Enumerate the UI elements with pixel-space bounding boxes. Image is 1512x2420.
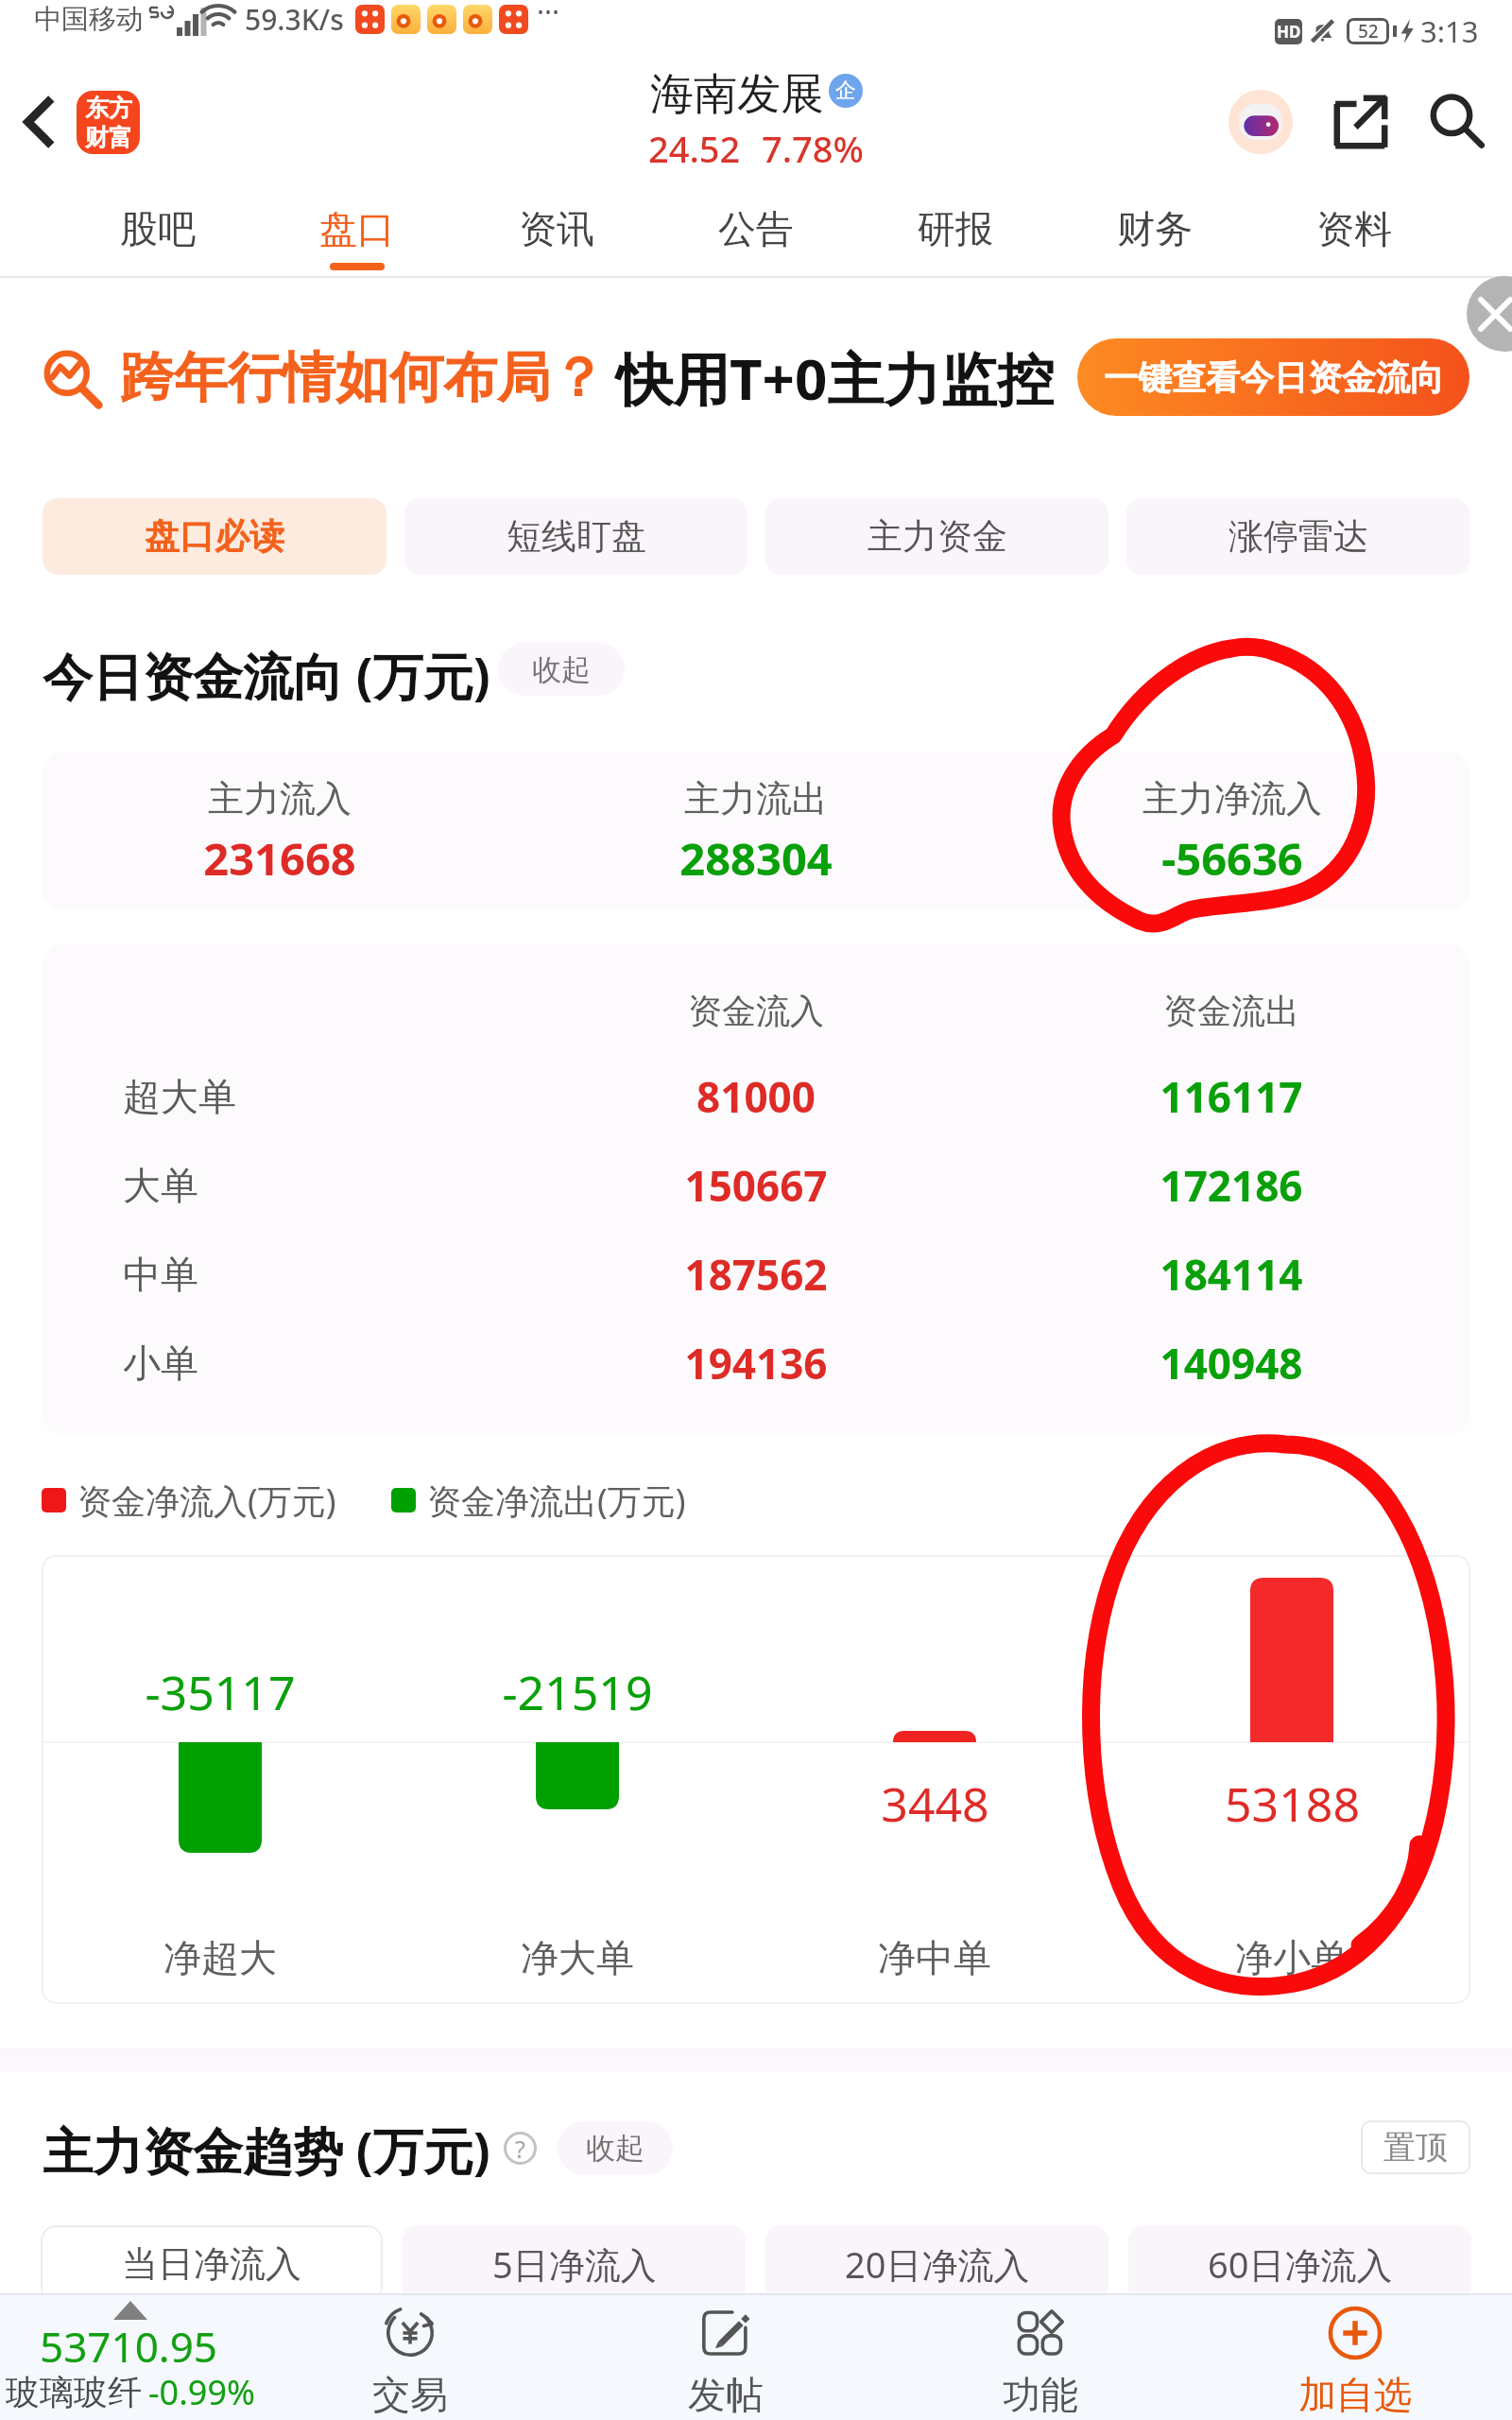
staticText: 主力资金趋势 (万元) xyxy=(43,2116,490,2184)
staticText: 资讯 xyxy=(519,205,594,252)
button[interactable]: 研报 xyxy=(889,181,1022,276)
staticText: 小单 xyxy=(123,1340,198,1387)
staticText: 187562 xyxy=(684,1246,828,1303)
staticText: 53188 xyxy=(1225,1772,1360,1836)
staticText: 53710.95 xyxy=(40,2318,217,2375)
staticText: 3448 xyxy=(881,1772,989,1836)
button[interactable]: 当日净流入 xyxy=(41,2225,383,2303)
staticText: 加自选 xyxy=(1298,2371,1412,2418)
button[interactable]: Close xyxy=(1467,276,1512,352)
staticText: 184114 xyxy=(1160,1246,1303,1303)
staticText: 资金净流入(万元) xyxy=(77,1478,336,1524)
staticText: 财富 xyxy=(85,123,132,152)
staticText: 短线盯盘 xyxy=(507,514,646,559)
button[interactable]: 资讯 xyxy=(490,181,623,276)
button[interactable]: 功能 xyxy=(883,2295,1197,2420)
button[interactable]: 5日净流入 xyxy=(403,2225,746,2303)
staticText: 公告 xyxy=(718,205,794,252)
staticText: 资料 xyxy=(1316,205,1392,252)
staticText: 收起 xyxy=(532,651,591,688)
staticText: 150667 xyxy=(684,1157,828,1214)
staticText: -35117 xyxy=(145,1660,296,1724)
button[interactable]: 60日净流入 xyxy=(1128,2225,1471,2303)
button[interactable]: 股吧 xyxy=(92,181,224,276)
button[interactable]: 财务 xyxy=(1089,181,1221,276)
staticText: 盘口必读 xyxy=(145,514,284,559)
button[interactable]: 主力资金 xyxy=(765,498,1108,575)
staticText: 研报 xyxy=(918,205,993,252)
staticText: 172186 xyxy=(1160,1157,1303,1214)
staticText: 主力流入 xyxy=(208,776,352,821)
button[interactable]: 发帖 xyxy=(568,2295,883,2420)
staticText: 快用T+0主力监控 xyxy=(616,339,1055,417)
button[interactable]: 置顶 xyxy=(1361,2120,1470,2174)
staticText: -21519 xyxy=(502,1660,653,1724)
staticText: 主力净流入 xyxy=(1143,776,1322,821)
staticText: 5日净流入 xyxy=(492,2239,657,2289)
staticText: 288304 xyxy=(679,828,833,889)
button[interactable]: 涨停雷达 xyxy=(1126,498,1469,575)
button[interactable]: 20日净流入 xyxy=(765,2225,1108,2303)
staticText: 跨年行情如何布局？ xyxy=(120,344,605,412)
staticText: 今日资金流向 (万元) xyxy=(43,641,490,709)
button[interactable]: 一键查看今日资金流向 xyxy=(1077,338,1469,416)
staticText: 中单 xyxy=(123,1251,198,1298)
staticText: 194136 xyxy=(684,1335,828,1391)
staticText: 59.3K/s xyxy=(245,0,344,39)
button[interactable]: 收起 xyxy=(558,2121,673,2175)
staticText: 东方 xyxy=(85,94,132,123)
staticText: 置顶 xyxy=(1383,2127,1448,2168)
staticText: 超大单 xyxy=(123,1073,236,1120)
button[interactable]: Share xyxy=(1323,84,1399,160)
staticText: 发帖 xyxy=(688,2371,764,2418)
staticText: 大单 xyxy=(123,1162,198,1209)
button[interactable]: 短线盯盘 xyxy=(404,498,747,575)
button[interactable]: 盘口必读 xyxy=(43,498,387,575)
staticText: -56636 xyxy=(1161,828,1303,889)
staticText: 净超大 xyxy=(163,1934,277,1981)
staticText: HD xyxy=(1277,21,1301,43)
button[interactable]: Back xyxy=(4,86,76,158)
staticText: 海南发展 xyxy=(650,67,824,122)
staticText: 7.78% xyxy=(762,124,864,173)
staticText: 主力流出 xyxy=(684,776,828,821)
button[interactable]: 交易 xyxy=(252,2295,568,2420)
staticText: 盘口 xyxy=(319,205,395,252)
button[interactable]: 53710.95 xyxy=(0,2295,252,2420)
staticText: 231668 xyxy=(203,828,356,889)
staticText: 140948 xyxy=(1160,1335,1303,1391)
staticText: 企 xyxy=(835,78,856,104)
staticText: 净中单 xyxy=(878,1934,991,1981)
button[interactable]: 加自选 xyxy=(1197,2295,1512,2420)
staticText: 当日净流入 xyxy=(122,2241,301,2287)
staticText: 一键查看今日资金流向 xyxy=(1104,356,1444,399)
button[interactable]: 盘口 xyxy=(291,181,423,276)
staticText: 财务 xyxy=(1117,205,1193,252)
button[interactable]: East Money xyxy=(77,91,140,154)
staticText: 资金净流出(万元) xyxy=(427,1478,686,1524)
staticText: 116117 xyxy=(1160,1068,1303,1125)
staticText: 净小单 xyxy=(1235,1934,1349,1981)
button[interactable]: Search xyxy=(1419,84,1495,160)
staticText: 股吧 xyxy=(120,205,196,252)
staticText: 功能 xyxy=(1003,2371,1078,2418)
staticText: 涨停雷达 xyxy=(1228,514,1368,559)
button[interactable]: AI assistant xyxy=(1223,84,1298,160)
staticText: 资金流出 xyxy=(1163,990,1299,1032)
staticText: 交易 xyxy=(372,2371,448,2418)
staticText: ? xyxy=(515,2133,525,2165)
staticText: 净大单 xyxy=(521,1934,634,1981)
staticText: 玻璃玻纤 xyxy=(6,2371,142,2413)
staticText: -0.99% xyxy=(148,2369,255,2415)
staticText: 3:13 xyxy=(1420,11,1479,51)
staticText: 20日净流入 xyxy=(845,2239,1030,2289)
button[interactable]: 收起 xyxy=(498,643,625,696)
staticText: 中国移动 xyxy=(34,2,144,37)
staticText: 52 xyxy=(1358,19,1379,43)
button[interactable]: Help xyxy=(504,2132,537,2165)
button[interactable]: 公告 xyxy=(690,181,822,276)
button[interactable]: 资料 xyxy=(1288,181,1420,276)
staticText: 资金流入 xyxy=(688,990,824,1032)
staticText: 收起 xyxy=(586,2130,644,2167)
staticText: 24.52 xyxy=(648,124,741,173)
